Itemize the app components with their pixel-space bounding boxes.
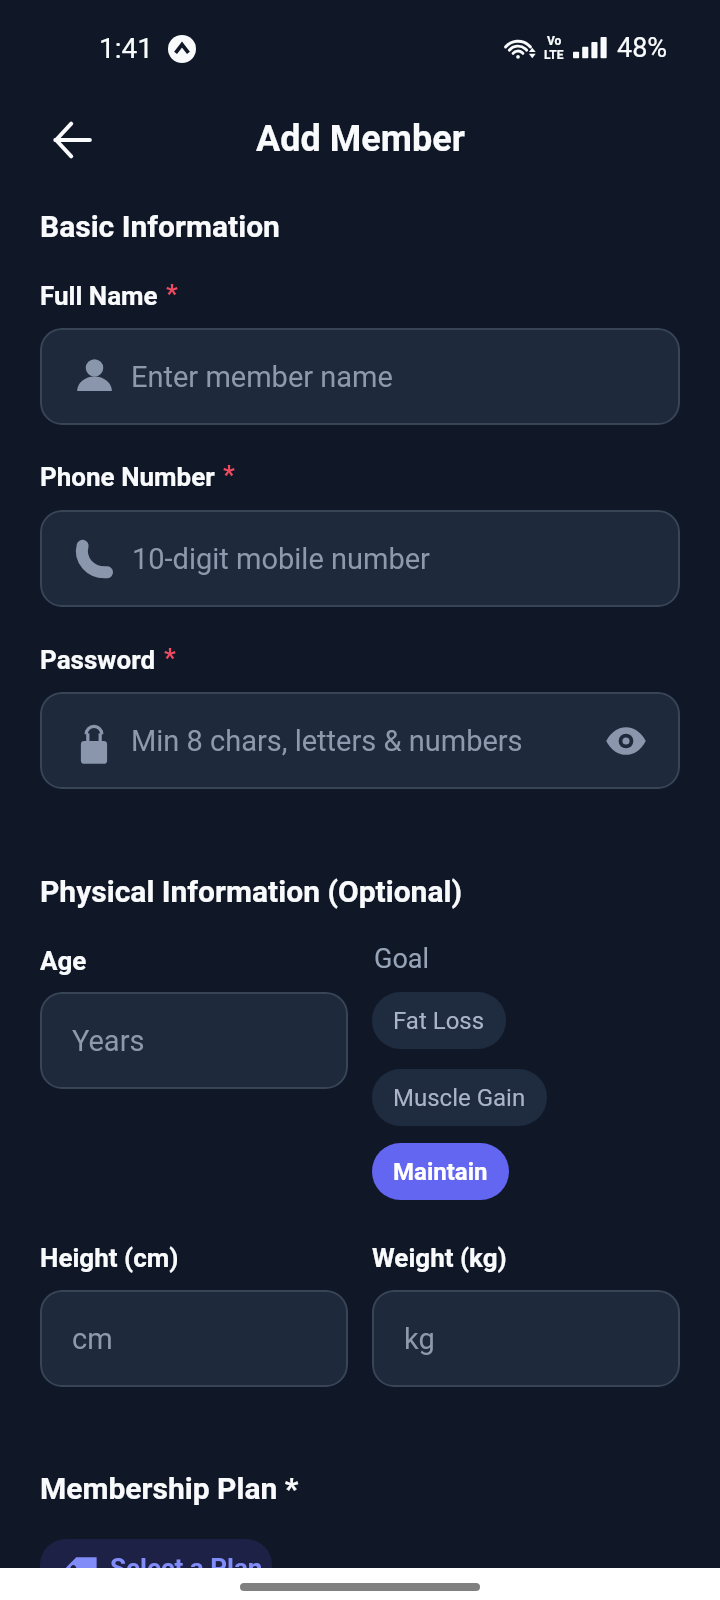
staticText: 10-digit mobile number — [132, 542, 430, 576]
button[interactable]: Show password — [598, 713, 654, 769]
staticText: * — [164, 643, 176, 673]
button[interactable]: Select a Plan — [40, 1539, 272, 1597]
staticText: Min 8 chars, letters & numbers — [131, 724, 523, 758]
button[interactable]: Enter member name — [40, 328, 680, 425]
staticText: Full Name — [40, 281, 158, 311]
staticText: Goal — [374, 943, 430, 975]
button[interactable]: Min 8 chars, letters & numbers — [40, 692, 680, 789]
staticText: Password — [40, 645, 156, 675]
staticText: Physical Information (Optional) — [40, 874, 463, 909]
staticText: kg — [404, 1322, 435, 1356]
staticText: Age — [40, 946, 87, 976]
button[interactable]: 10-digit mobile number — [40, 510, 680, 607]
staticText: LTE — [544, 48, 564, 62]
staticText: Enter member name — [131, 360, 393, 394]
staticText: 48% — [617, 32, 668, 64]
staticText: Add Member — [256, 118, 465, 160]
staticText: Vo — [547, 34, 562, 48]
staticText: 1:41 — [99, 32, 153, 65]
staticText: Weight (kg) — [372, 1243, 507, 1273]
button[interactable]: Muscle Gain — [372, 1069, 547, 1126]
staticText: Basic Information — [40, 209, 280, 244]
button[interactable]: Years — [40, 992, 348, 1089]
staticText: Muscle Gain — [393, 1084, 526, 1112]
staticText: Years — [72, 1024, 145, 1058]
staticText: cm — [72, 1322, 113, 1356]
staticText: Select a Plan — [110, 1553, 263, 1583]
staticText: Fat Loss — [393, 1007, 485, 1035]
staticText: * — [166, 279, 178, 309]
staticText: Membership Plan * — [40, 1471, 299, 1506]
staticText: Height (cm) — [40, 1243, 179, 1273]
staticText: Maintain — [393, 1158, 488, 1186]
button[interactable]: Fat Loss — [372, 992, 506, 1049]
button[interactable]: Back — [42, 110, 102, 170]
button[interactable]: cm — [40, 1290, 348, 1387]
button[interactable]: Maintain — [372, 1143, 509, 1200]
button[interactable]: kg — [372, 1290, 680, 1387]
staticText: * — [223, 460, 235, 490]
staticText: Phone Number — [40, 462, 215, 492]
